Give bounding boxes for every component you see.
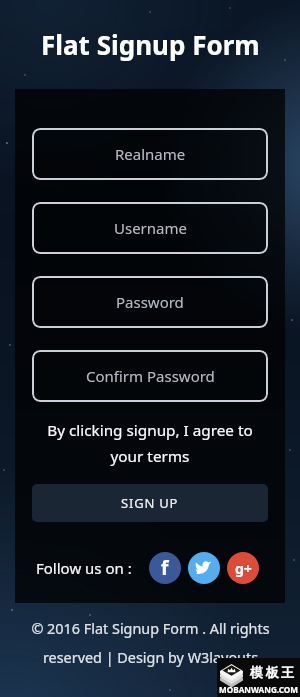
staticText: MOBANWANG.COM xyxy=(219,684,298,695)
staticText: 模板王 xyxy=(250,664,297,680)
staticText: Realname xyxy=(115,144,186,164)
button[interactable]: f xyxy=(149,552,181,584)
staticText: Flat Signup Form xyxy=(41,27,260,62)
staticText: Username xyxy=(114,218,187,238)
staticText: By clicking signup, I agree to your term… xyxy=(47,420,253,467)
button[interactable] xyxy=(188,552,220,584)
button[interactable]: Password xyxy=(32,276,268,328)
staticText: Password xyxy=(116,292,184,312)
button[interactable]: SIGN UP xyxy=(32,484,268,522)
button[interactable]: g+ xyxy=(227,552,259,584)
staticText: Follow us on : xyxy=(36,558,132,578)
button[interactable]: Confirm Password xyxy=(32,350,268,402)
button[interactable]: Username xyxy=(32,202,268,254)
staticText: Confirm Password xyxy=(86,366,215,386)
button[interactable]: Realname xyxy=(32,128,268,180)
staticText: © 2016 Flat Signup Form . All rights res… xyxy=(31,619,270,668)
staticText: SIGN UP xyxy=(121,494,179,512)
staticText: f xyxy=(161,555,169,581)
staticText: g+ xyxy=(235,559,252,578)
button[interactable]: 模板王 xyxy=(217,658,300,697)
